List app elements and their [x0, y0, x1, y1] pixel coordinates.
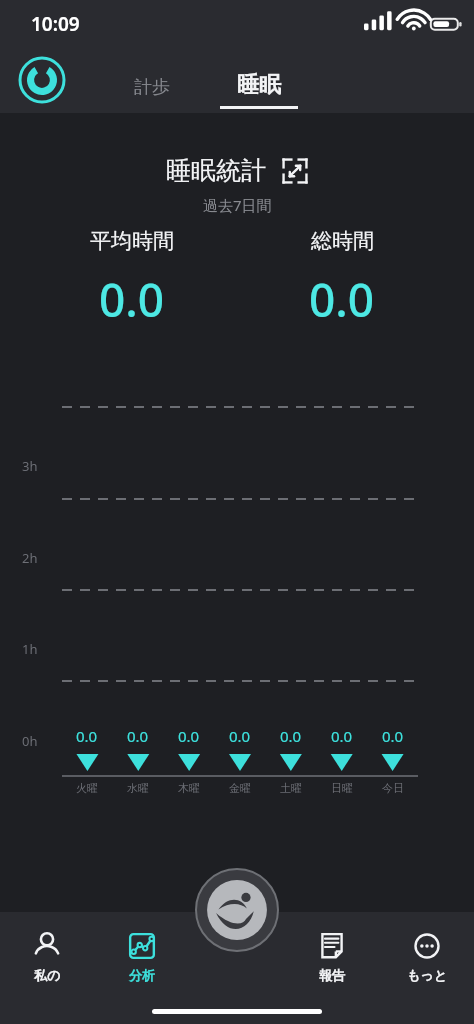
staticText: 計歩 — [134, 76, 170, 99]
staticText: もっと — [407, 967, 447, 983]
staticText: 過去7日間 — [203, 195, 272, 215]
button[interactable]: 火曜 — [76, 781, 98, 795]
button[interactable]: 報告 — [284, 928, 379, 985]
button[interactable]: 水曜 — [127, 781, 149, 795]
staticText: 平均時間 — [90, 228, 174, 254]
button[interactable]: 木曜 — [178, 781, 200, 795]
button[interactable]: 土曜 — [280, 781, 302, 795]
staticText: 0.0 — [76, 726, 98, 746]
staticText: 0.0 — [229, 726, 251, 746]
button[interactable]: Start activity — [195, 868, 279, 952]
button[interactable]: もっと — [379, 928, 474, 985]
staticText: 0.0 — [280, 726, 302, 746]
button[interactable]: 睡眠統計 — [166, 155, 308, 186]
staticText: 0.0 — [127, 726, 149, 746]
button[interactable]: 日曜 — [331, 781, 353, 795]
staticText: 0.0 — [331, 726, 353, 746]
other: Expand — [282, 158, 308, 184]
staticText: 分析 — [129, 967, 155, 983]
staticText: 2h — [22, 549, 38, 567]
button[interactable]: 睡眠 — [212, 71, 306, 113]
button[interactable]: 私の — [0, 928, 94, 985]
staticText: 睡眠統計 — [166, 155, 266, 186]
button[interactable]: 金曜 — [229, 781, 251, 795]
button[interactable]: 今日 — [382, 781, 404, 795]
staticText: 私の — [34, 967, 61, 983]
staticText: 総時間 — [311, 228, 374, 254]
staticText: 睡眠 — [237, 71, 281, 99]
staticText: 10:09 — [31, 11, 80, 37]
staticText: 0.0 — [309, 268, 375, 331]
staticText: 0.0 — [99, 268, 165, 331]
staticText: 0h — [22, 732, 38, 750]
button[interactable]: Profile ring — [16, 54, 68, 106]
staticText: 0.0 — [382, 726, 404, 746]
staticText: 報告 — [319, 967, 345, 983]
button[interactable]: 分析 — [94, 928, 189, 985]
button[interactable]: 計歩 — [126, 76, 178, 113]
staticText: 0.0 — [178, 726, 200, 746]
staticText: 3h — [22, 457, 38, 475]
staticText: 1h — [22, 640, 38, 658]
